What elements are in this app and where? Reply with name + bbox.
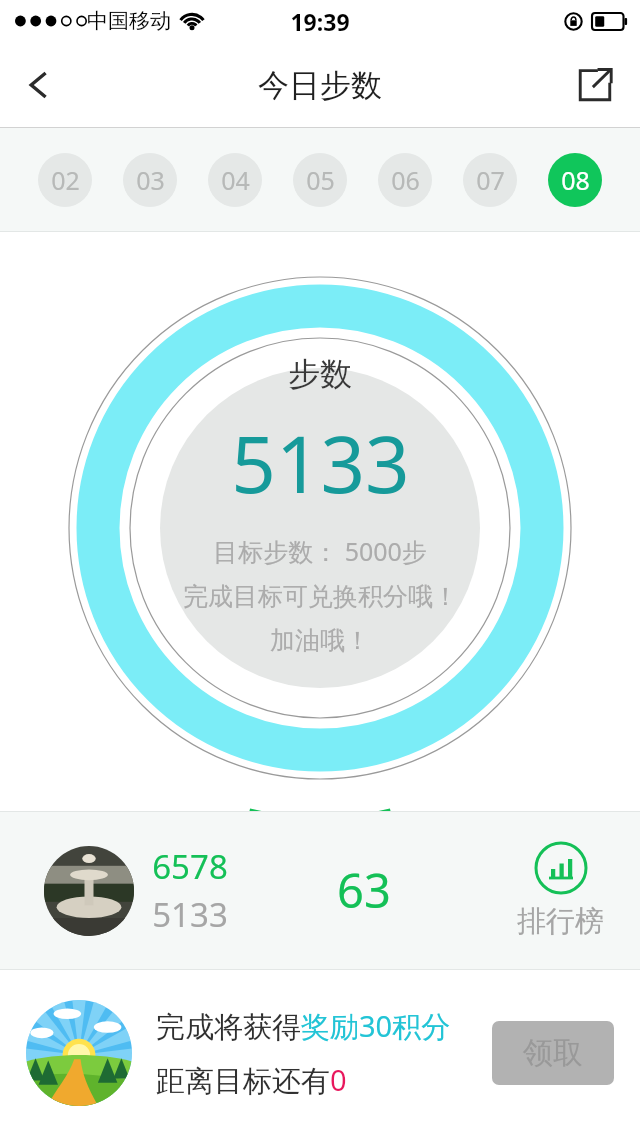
staticText: 02	[51, 163, 80, 197]
button[interactable]: 05	[293, 153, 347, 207]
button[interactable]: 6578	[44, 844, 228, 937]
button[interactable]: 04	[208, 153, 262, 207]
button[interactable]: 02	[38, 153, 92, 207]
staticText: 04	[221, 163, 250, 197]
button[interactable]: 03	[123, 153, 177, 207]
button[interactable]: Share	[566, 56, 624, 114]
staticText: 63	[337, 858, 391, 922]
staticText: 06	[391, 163, 420, 197]
staticText: 步数	[288, 354, 352, 394]
staticText: 中国移动	[87, 8, 171, 34]
button[interactable]: 07	[463, 153, 517, 207]
button[interactable]: Back	[10, 56, 68, 114]
staticText: 排行榜	[517, 903, 604, 940]
staticText: 加油哦！	[270, 625, 370, 656]
staticText: 08	[561, 163, 590, 197]
button[interactable]: 08	[548, 153, 602, 207]
staticText: 完成目标可兑换积分哦！	[183, 581, 458, 612]
button[interactable]: 排行榜	[517, 841, 604, 940]
staticText: 目标步数： 5000步	[213, 534, 427, 568]
staticText: 05	[306, 163, 335, 197]
button[interactable]: 领取	[492, 1021, 614, 1085]
staticText: 5133	[152, 892, 228, 937]
staticText: 5133	[231, 410, 410, 516]
staticText: 完成将获得奖励30积分	[156, 1006, 451, 1046]
staticText: 6578	[152, 844, 228, 889]
staticText: 领取	[523, 1034, 583, 1072]
button[interactable]: 06	[378, 153, 432, 207]
staticText: 今日步数	[258, 66, 382, 105]
staticText: 07	[476, 163, 505, 197]
staticText: 距离目标还有0	[156, 1060, 347, 1100]
staticText: 03	[136, 163, 165, 197]
staticText: 19:39	[290, 6, 350, 37]
